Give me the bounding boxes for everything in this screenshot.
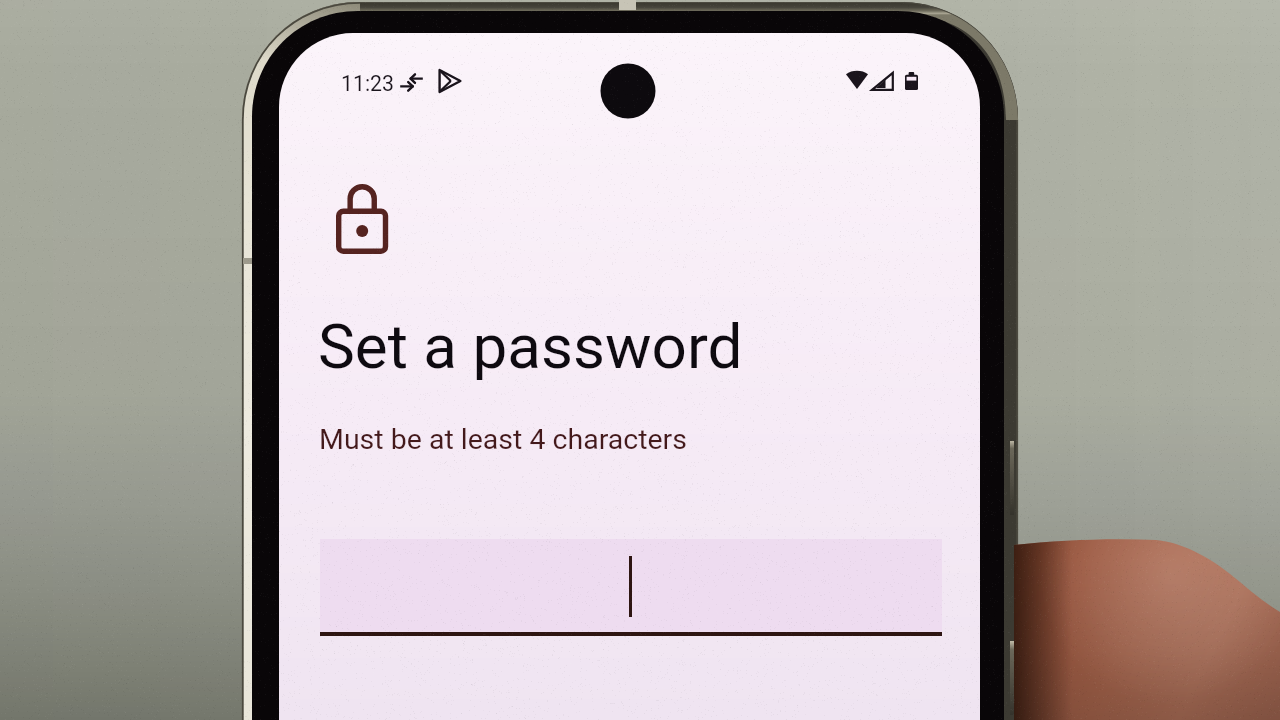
staticText: 11:23 [341,71,395,96]
other: Google Play [437,67,463,95]
button[interactable] [320,539,942,636]
staticText: Set a password [318,310,743,383]
other: Data saver [399,73,425,93]
staticText: Must be at least 4 characters [319,423,687,456]
